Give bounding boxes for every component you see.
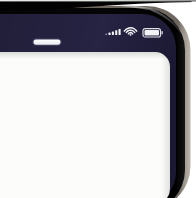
button[interactable]: Phone device mockup, top-right corner xyxy=(0,0,196,198)
other: Status bar: signal, Wi-Fi, battery xyxy=(0,0,196,198)
